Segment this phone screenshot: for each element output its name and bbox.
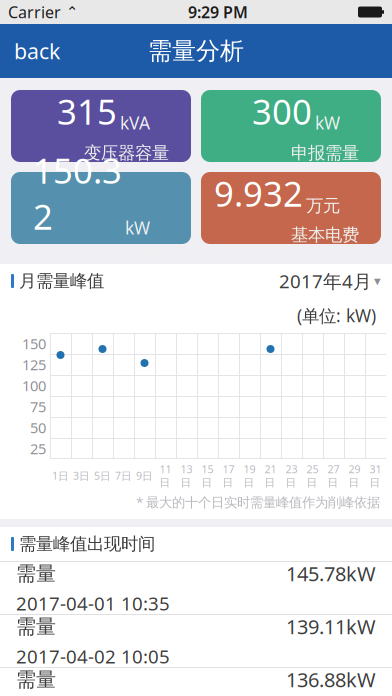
button[interactable]: 需量	[0, 562, 392, 614]
staticText: 145.78kW	[286, 560, 376, 587]
staticText: 100	[22, 376, 46, 395]
staticText: 23日	[285, 462, 297, 489]
staticText: 3日	[73, 469, 90, 483]
staticText: 9:29 PM	[188, 1, 248, 23]
staticText: 7日	[115, 469, 132, 483]
staticText: 需量	[16, 614, 56, 639]
button[interactable]: 需量	[0, 668, 392, 696]
staticText: 9日	[136, 469, 153, 483]
button[interactable]: 315	[11, 90, 191, 162]
staticText: 50	[30, 418, 46, 437]
staticText: 125	[22, 355, 46, 374]
staticText: 25日	[306, 462, 318, 489]
staticText: 150.32	[33, 147, 122, 239]
staticText: kW	[125, 216, 150, 239]
staticText: 1日	[52, 469, 69, 483]
button[interactable]: back	[0, 29, 74, 73]
staticText: 15日	[201, 462, 213, 489]
button[interactable]: 9.932	[201, 172, 381, 244]
staticText: 实际最大需量	[67, 247, 169, 269]
staticText: 25	[30, 439, 46, 458]
staticText: 21日	[264, 462, 276, 489]
staticText: ⌃	[61, 4, 78, 20]
staticText: 需量	[16, 561, 56, 586]
staticText: 5日	[94, 469, 111, 483]
staticText: 2017年4月	[279, 269, 372, 293]
staticText: 需量	[16, 667, 56, 692]
staticText: 需量分析	[148, 36, 244, 66]
staticText: kW	[315, 111, 340, 134]
staticText: (单位: kW)	[297, 304, 376, 327]
staticText: 月需量峰值	[19, 270, 104, 292]
staticText: 13日	[180, 462, 192, 489]
staticText: 申报需量	[291, 142, 359, 164]
staticText: 315	[57, 88, 117, 134]
button[interactable]: 300	[201, 90, 381, 162]
button[interactable]: 2017年4月	[279, 263, 381, 299]
staticText: 基本电费	[291, 224, 359, 246]
staticText: 19日	[243, 462, 255, 489]
staticText: 万元	[306, 195, 340, 216]
staticText: 29日	[348, 462, 360, 489]
staticText: ▾	[374, 273, 381, 288]
staticText: 75	[30, 397, 46, 416]
staticText: back	[14, 37, 60, 65]
staticText: * 最大的十个日实时需量峰值作为削峰依据	[136, 493, 380, 511]
staticText: 139.11kW	[286, 613, 376, 640]
staticText: 136.88kW	[286, 666, 376, 693]
staticText: 150	[22, 334, 46, 353]
staticText: 17日	[222, 462, 234, 489]
button[interactable]: 需量	[0, 615, 392, 667]
staticText: 需量峰值出现时间	[19, 533, 155, 555]
staticText: 300	[252, 88, 312, 134]
staticText: 27日	[327, 462, 339, 489]
button[interactable]: 150.32	[11, 172, 191, 244]
staticText: 2017-04-01 10:35	[16, 591, 170, 616]
staticText: 变压器容量	[84, 142, 169, 164]
staticText: 31日	[369, 462, 381, 489]
staticText: Carrier	[8, 1, 61, 23]
staticText: kVA	[120, 111, 150, 134]
staticText: 11日	[159, 462, 171, 489]
staticText: 2017-04-02 10:05	[16, 644, 170, 669]
staticText: 9.932	[214, 170, 303, 216]
